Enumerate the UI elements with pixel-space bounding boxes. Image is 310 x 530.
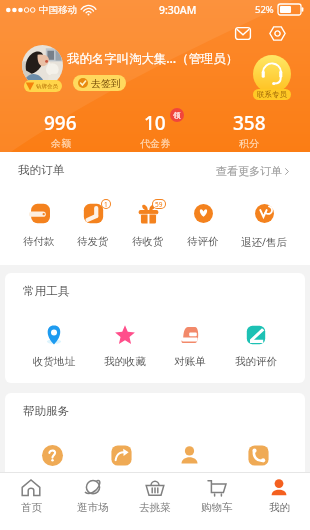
button[interactable]: 对账单 xyxy=(174,325,206,368)
staticText: 去挑菜 xyxy=(139,501,171,514)
button[interactable]: 去挑菜 xyxy=(124,473,186,530)
button[interactable]: 我的收藏 xyxy=(104,325,146,368)
staticText: 常见问题 xyxy=(31,476,73,489)
button[interactable]: 常见问题 xyxy=(31,445,73,489)
button[interactable]: 待评价 xyxy=(187,203,219,248)
staticText: 购物车 xyxy=(201,501,233,514)
staticText: 996 xyxy=(44,110,77,136)
button[interactable]: 1 xyxy=(77,203,109,248)
button[interactable]: 查看更多订单 xyxy=(216,160,289,182)
staticText: 358 xyxy=(233,110,266,136)
staticText: 分享好友 xyxy=(100,476,142,489)
staticText: 59 xyxy=(155,200,163,208)
staticText: 逛市场 xyxy=(77,501,109,514)
staticText: 收货地址 xyxy=(33,355,75,368)
button[interactable]: 待付款 xyxy=(23,203,55,248)
button[interactable]: 我的评价 xyxy=(235,325,277,368)
staticText: 联系专员 xyxy=(257,90,287,99)
staticText: 待付款 xyxy=(23,235,55,248)
staticText: 待评价 xyxy=(187,235,219,248)
staticText: 个人中心 xyxy=(168,476,210,489)
button[interactable]: 退还/售后 xyxy=(241,203,287,249)
staticText: 钻牌会员 xyxy=(36,83,58,90)
staticText: 退还/售后 xyxy=(241,235,287,249)
staticText: 10 xyxy=(144,110,166,136)
staticText: 我的订单 xyxy=(18,163,65,178)
staticText: 首页 xyxy=(21,501,42,514)
staticText: 我的收藏 xyxy=(104,355,146,368)
button[interactable]: Messages xyxy=(232,22,254,44)
button[interactable]: 358 xyxy=(202,110,296,150)
button[interactable]: 购物车 xyxy=(186,473,248,530)
button[interactable]: 996 xyxy=(13,110,108,150)
staticText: 积分 xyxy=(239,137,259,150)
button[interactable]: 首页 xyxy=(0,473,62,530)
staticText: 查看更多订单 xyxy=(216,164,282,178)
staticText: 9:30AM xyxy=(159,3,197,17)
staticText: 帮助服务 xyxy=(23,404,70,419)
staticText: 1 xyxy=(104,200,108,208)
staticText: 52% xyxy=(255,3,274,16)
staticText: 常用工具 xyxy=(23,284,70,299)
button[interactable]: 去签到 xyxy=(73,75,126,91)
staticText: 余额 xyxy=(51,137,71,150)
staticText: 领 xyxy=(173,111,181,120)
button[interactable]: 头像 xyxy=(22,45,63,86)
button[interactable]: 收货地址 xyxy=(33,325,75,368)
staticText: 代金券 xyxy=(140,137,170,150)
staticText: 我的 xyxy=(269,501,290,514)
button[interactable]: 59 xyxy=(132,203,164,248)
staticText: 中国移动 xyxy=(39,4,77,16)
staticText: 待发货 xyxy=(77,235,109,248)
button[interactable]: Settings xyxy=(266,22,288,44)
button[interactable]: 个人中心 xyxy=(168,445,210,489)
button[interactable]: 联系客服 xyxy=(237,445,279,489)
staticText: 联系客服 xyxy=(237,476,279,489)
button[interactable]: 分享好友 xyxy=(100,445,142,489)
button[interactable]: 我的 xyxy=(248,473,310,530)
staticText: 我的评价 xyxy=(235,355,277,368)
button[interactable]: 逛市场 xyxy=(62,473,124,530)
staticText: 对账单 xyxy=(174,355,206,368)
staticText: 去签到 xyxy=(91,77,121,90)
button[interactable]: 10 xyxy=(108,110,202,150)
button[interactable]: 联系专员 xyxy=(251,55,292,100)
staticText: 待收货 xyxy=(132,235,164,248)
staticText: 我的名字叫淘大集...（管理员） xyxy=(67,50,239,67)
